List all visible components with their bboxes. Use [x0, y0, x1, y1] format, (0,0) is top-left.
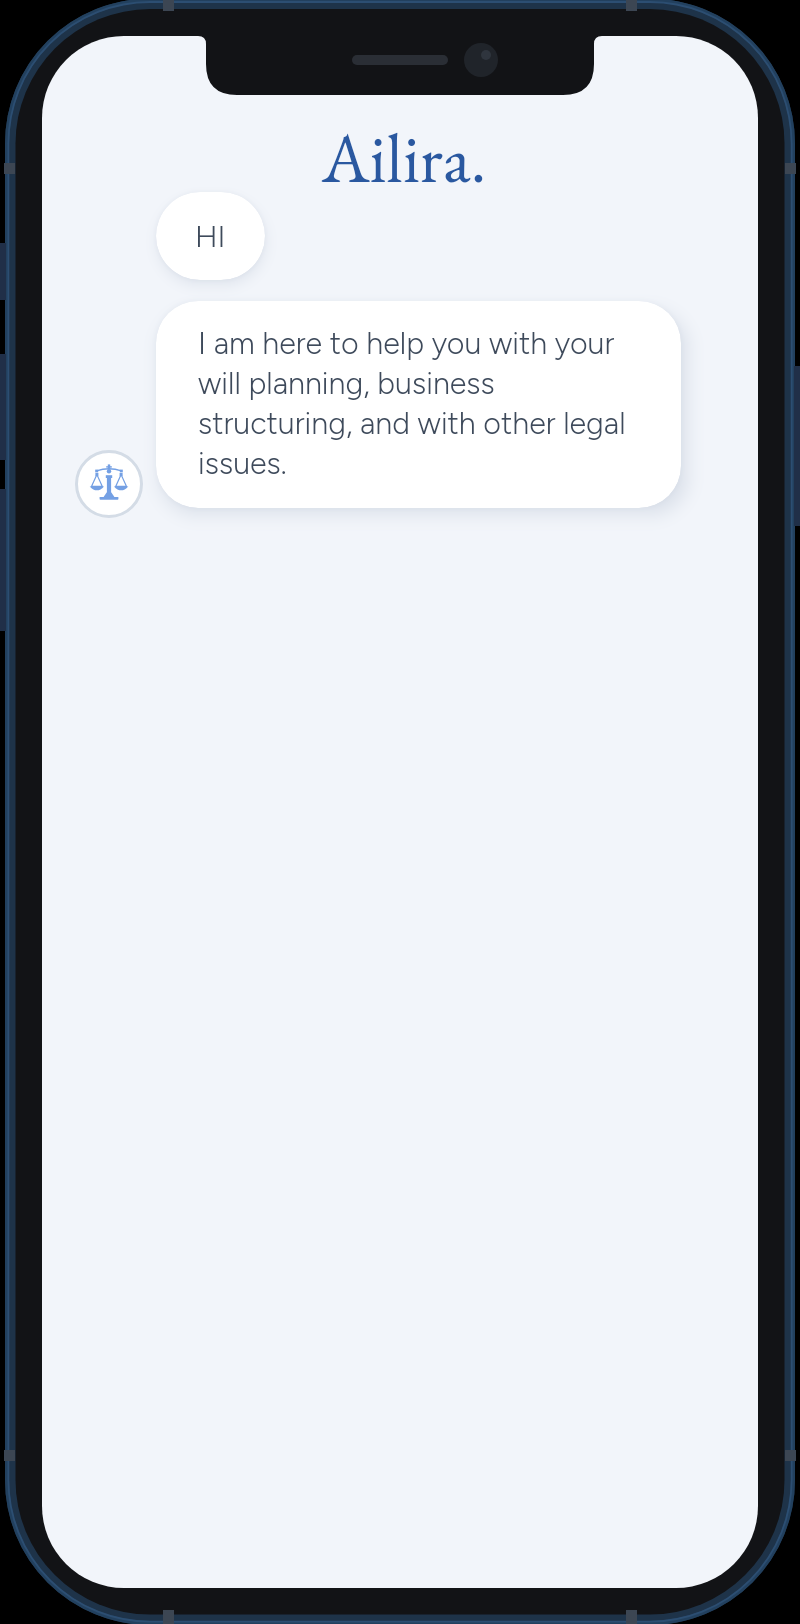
staticText: Ailira.: [46, 113, 758, 203]
staticText: I am here to help you with your will pla…: [198, 325, 626, 481]
button[interactable]: HI: [156, 192, 265, 280]
button[interactable]: Ailira assistant avatar: [75, 450, 143, 518]
staticText: HI: [195, 218, 226, 254]
button[interactable]: I am here to help you with your will pla…: [156, 301, 681, 508]
